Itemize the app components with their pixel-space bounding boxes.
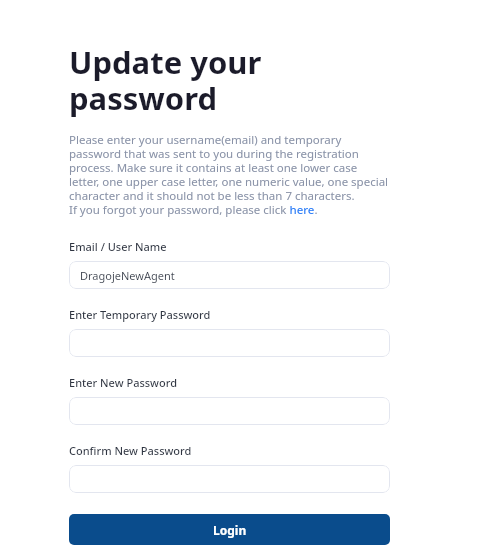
staticText: Confirm New Password bbox=[69, 443, 192, 458]
staticText: DragojeNewAgent bbox=[80, 268, 175, 283]
staticText: Update your password bbox=[69, 41, 390, 119]
staticText: Enter Temporary Password bbox=[69, 307, 211, 322]
button[interactable]: Login bbox=[69, 514, 390, 545]
staticText: Enter New Password bbox=[69, 375, 177, 390]
button[interactable]: DragojeNewAgent bbox=[69, 261, 390, 289]
button[interactable] bbox=[69, 329, 390, 357]
staticText: Please enter your username(email) and te… bbox=[69, 132, 390, 217]
button[interactable] bbox=[69, 465, 390, 493]
staticText: Email / User Name bbox=[69, 239, 167, 254]
button[interactable] bbox=[69, 397, 390, 425]
staticText: Login bbox=[213, 522, 247, 538]
